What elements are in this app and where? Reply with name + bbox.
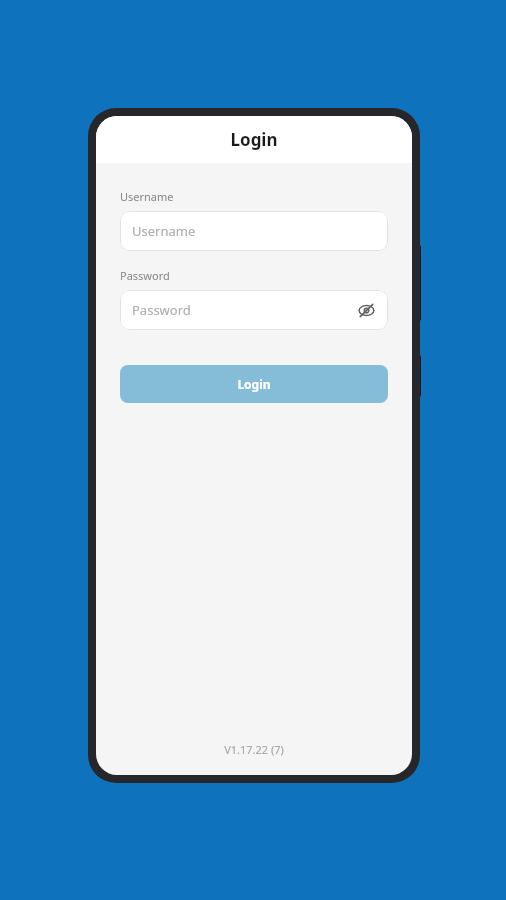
- staticText: Login: [237, 376, 271, 392]
- staticText: Username: [120, 189, 174, 204]
- staticText: Username: [132, 222, 196, 240]
- button[interactable]: Username: [120, 211, 388, 251]
- button[interactable]: Password: [120, 290, 388, 330]
- button[interactable]: Show password: [356, 300, 376, 320]
- staticText: Password: [132, 301, 191, 319]
- button[interactable]: Login: [120, 365, 388, 403]
- staticText: V1.17.22 (7): [224, 742, 284, 757]
- staticText: Login: [230, 128, 278, 151]
- staticText: Password: [120, 268, 170, 283]
